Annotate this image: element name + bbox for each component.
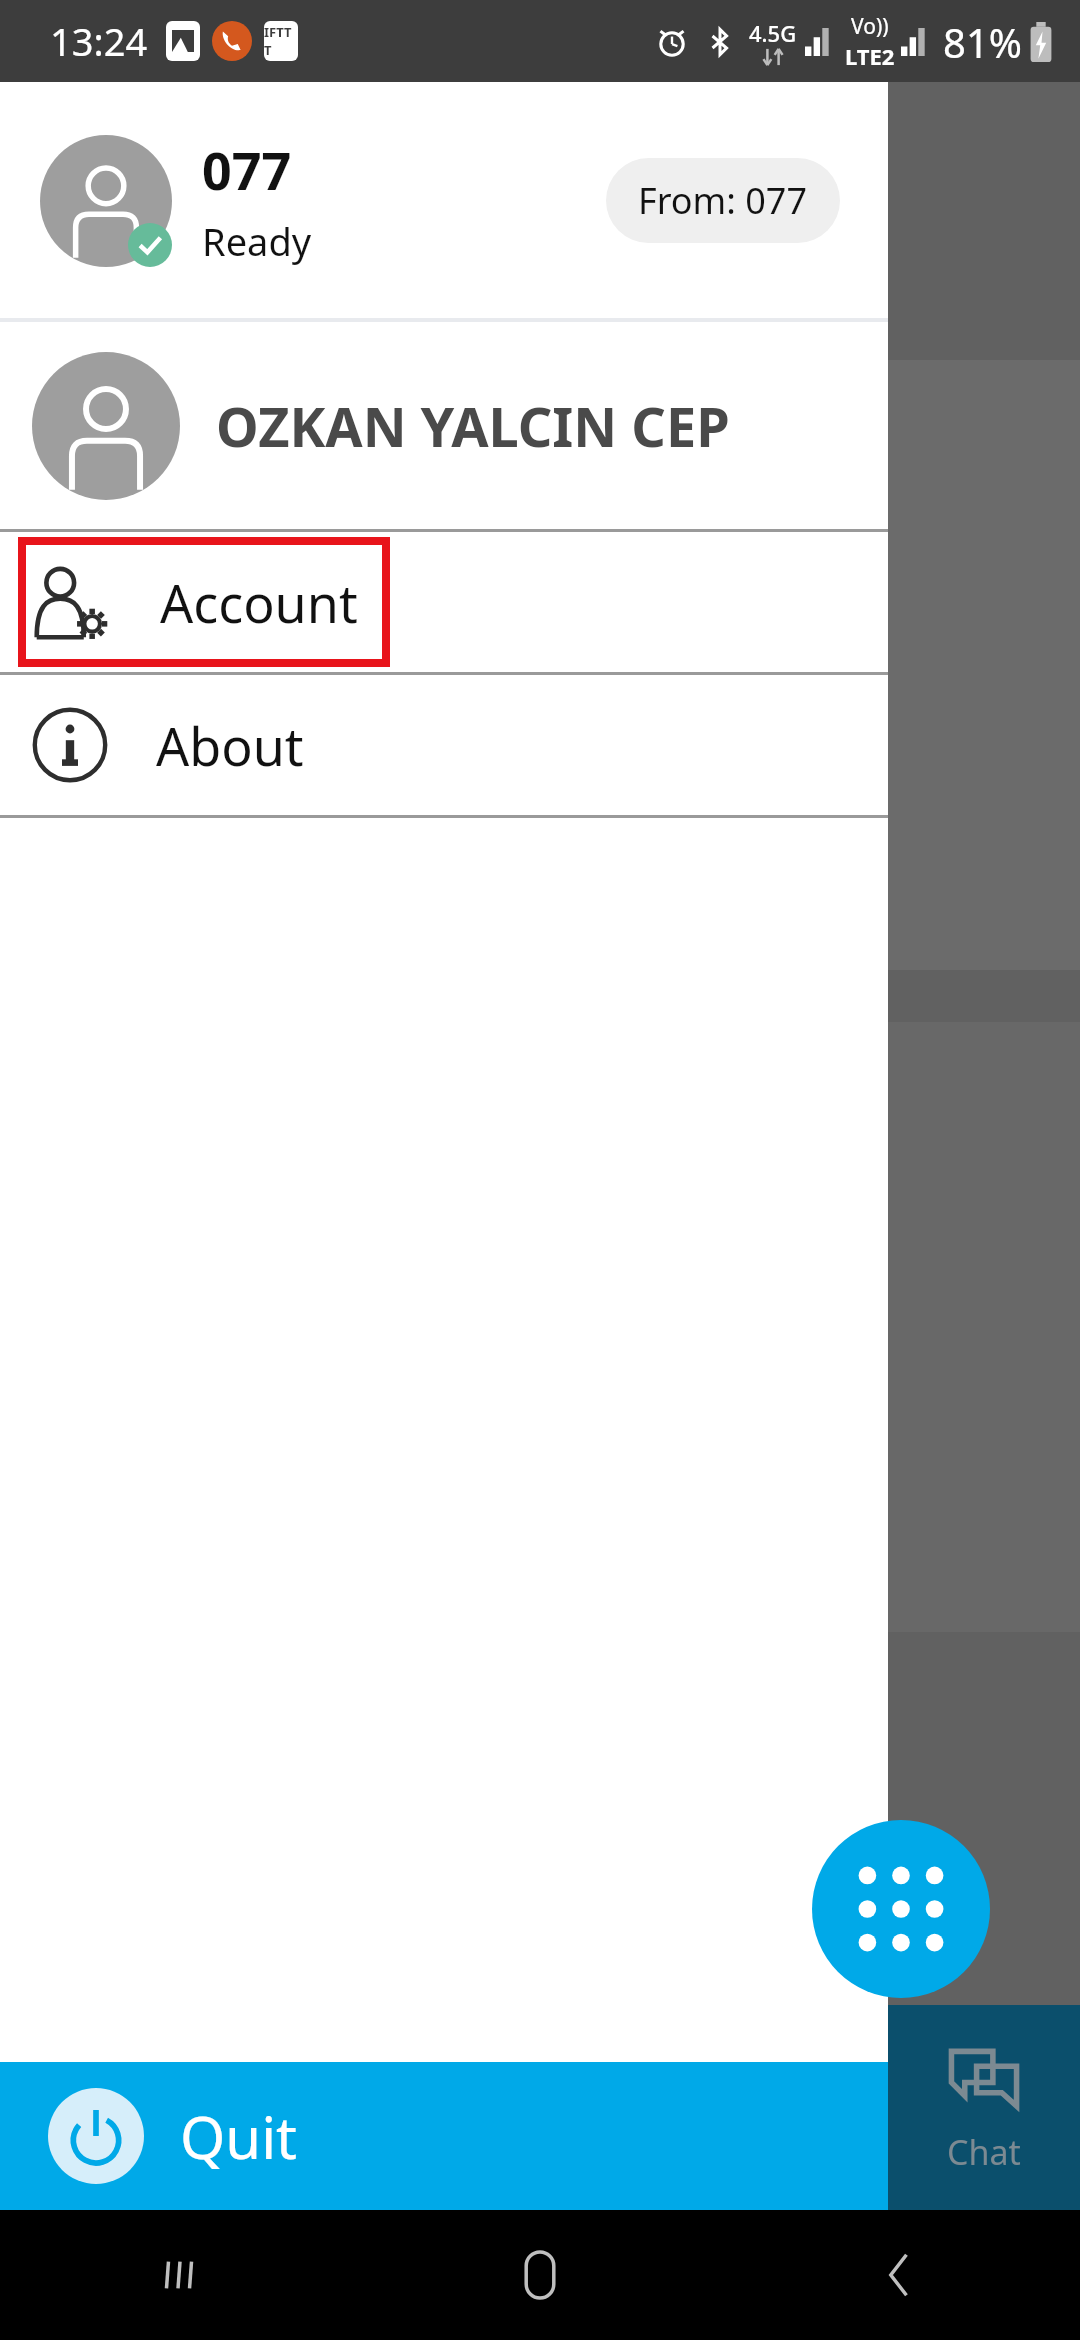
button[interactable]: Recents — [145, 2240, 215, 2310]
button[interactable]: 077 — [40, 134, 312, 267]
button[interactable]: Chat — [888, 2005, 1080, 2210]
staticText: Ready — [202, 215, 312, 267]
staticText: LTE2 — [845, 41, 895, 71]
button[interactable]: Quit — [0, 2062, 888, 2210]
staticText: IFTTT — [264, 23, 298, 59]
button[interactable]: Dialpad — [812, 1820, 990, 1998]
button[interactable]: Account — [0, 532, 888, 672]
staticText: About — [156, 710, 304, 781]
staticText: 077 — [202, 134, 292, 205]
button[interactable]: From: 077 — [606, 158, 840, 243]
staticText: From: 077 — [638, 176, 808, 225]
staticText: Quit — [180, 2097, 298, 2176]
staticText: Chat — [947, 2129, 1021, 2175]
button[interactable]: Home — [505, 2240, 575, 2310]
staticText: 81% — [943, 15, 1022, 69]
staticText: OZKAN YALCIN CEP — [216, 389, 730, 463]
button[interactable]: About — [0, 675, 888, 815]
button[interactable]: Back — [865, 2240, 935, 2310]
staticText: Account — [160, 567, 358, 638]
staticText: 13:24 — [50, 15, 148, 67]
staticText: 4.5G — [749, 18, 797, 48]
button[interactable]: OZKAN YALCIN CEP — [0, 322, 888, 529]
staticText: Vo)) — [851, 12, 889, 41]
